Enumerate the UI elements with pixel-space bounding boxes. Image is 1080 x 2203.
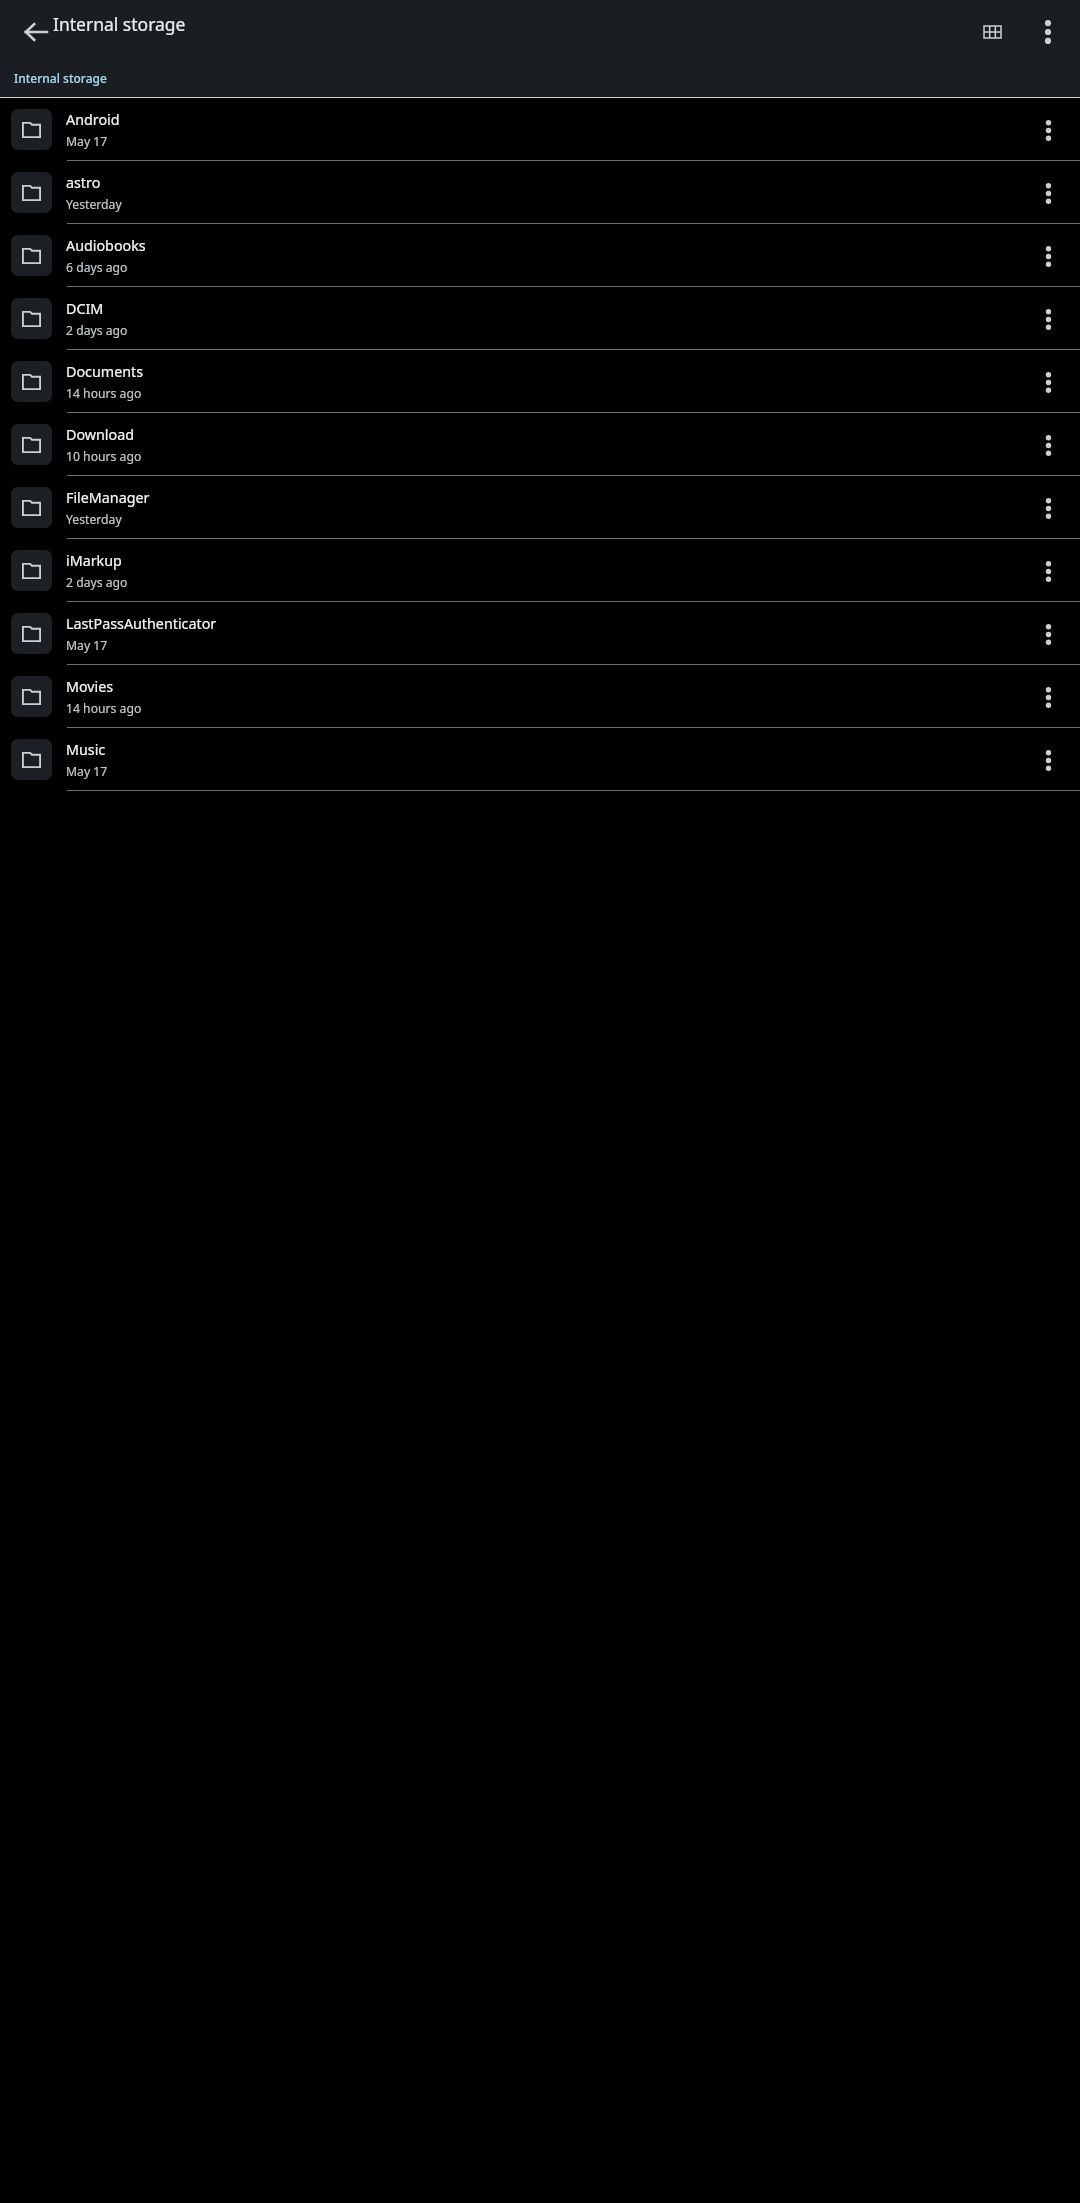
staticText: May 17 [66,133,108,150]
button[interactable]: DCIM [0,287,1080,350]
staticText: FileManager [66,488,150,507]
button[interactable]: More options [1022,6,1074,58]
button[interactable]: FileManager [0,476,1080,539]
staticText: Movies [66,677,114,696]
button[interactable]: Internal storage [8,58,113,98]
button[interactable]: More options for Movies [1022,671,1074,723]
button[interactable]: Music [0,728,1080,791]
button[interactable]: Android [0,98,1080,161]
staticText: astro [66,173,101,192]
button[interactable]: More options for Download [1022,419,1074,471]
button[interactable]: More options for FileManager [1022,482,1074,534]
button[interactable]: More options for iMarkup [1022,545,1074,597]
staticText: iMarkup [66,551,122,570]
staticText: Documents [66,362,144,381]
button[interactable]: More options for Documents [1022,356,1074,408]
button[interactable]: More options for LastPassAuthenticator [1022,608,1074,660]
staticText: 2 days ago [66,574,128,591]
button[interactable]: More options for Music [1022,734,1074,786]
button[interactable]: Audiobooks [0,224,1080,287]
staticText: Music [66,740,106,759]
staticText: 14 hours ago [66,700,142,717]
button[interactable]: iMarkup [0,539,1080,602]
button[interactable]: astro [0,161,1080,224]
staticText: Android [66,110,120,129]
staticText: 6 days ago [66,259,128,276]
button[interactable]: More options for astro [1022,167,1074,219]
staticText: May 17 [66,763,108,780]
button[interactable]: Grid view [966,6,1018,58]
staticText: 10 hours ago [66,448,142,465]
button[interactable]: Documents [0,350,1080,413]
staticText: May 17 [66,637,108,654]
button[interactable]: Back [12,8,60,56]
button[interactable]: Movies [0,665,1080,728]
staticText: Yesterday [66,196,122,213]
staticText: Internal storage [14,70,107,86]
staticText: Audiobooks [66,236,146,255]
staticText: Internal storage [53,12,186,36]
staticText: Download [66,425,135,444]
button[interactable]: LastPassAuthenticator [0,602,1080,665]
button[interactable]: More options for Android [1022,104,1074,156]
staticText: DCIM [66,299,104,318]
button[interactable]: More options for Audiobooks [1022,230,1074,282]
staticText: 14 hours ago [66,385,142,402]
button[interactable]: Download [0,413,1080,476]
staticText: Yesterday [66,511,122,528]
button[interactable]: More options for DCIM [1022,293,1074,345]
staticText: LastPassAuthenticator [66,614,217,633]
staticText: 2 days ago [66,322,128,339]
